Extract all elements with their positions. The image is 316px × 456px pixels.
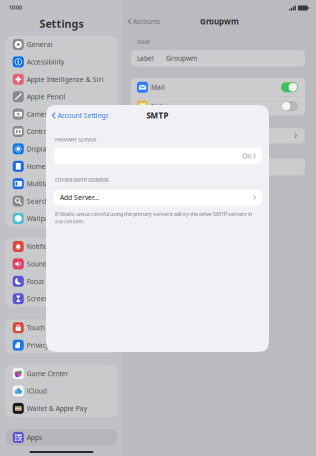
staticText: Account Settings xyxy=(57,111,108,120)
staticText: Apps xyxy=(27,433,42,442)
button[interactable]: Screen Time xyxy=(6,290,117,307)
staticText: Mail xyxy=(151,83,165,92)
staticText: Notifications xyxy=(27,242,66,251)
button[interactable]: General xyxy=(6,36,117,53)
staticText: IMAP xyxy=(137,38,150,45)
button[interactable]: Camera xyxy=(6,106,117,123)
button[interactable]: On xyxy=(54,148,262,164)
button[interactable]: Display & Brightness xyxy=(6,140,117,157)
staticText: On xyxy=(242,151,251,160)
staticText: Settings xyxy=(39,16,83,31)
staticText: Display & Brightness xyxy=(27,144,92,153)
staticText: Focus xyxy=(27,277,44,286)
staticText: Screen Time xyxy=(27,294,67,303)
staticText: Search xyxy=(27,197,49,206)
staticText: Multitasking & Gestures xyxy=(27,179,103,188)
button[interactable]: Game Center xyxy=(6,365,117,382)
button[interactable]: Wallet & Apple Pay xyxy=(6,400,117,417)
button[interactable]: Multitasking & Gestures xyxy=(6,175,117,192)
staticText: General xyxy=(27,40,53,49)
button[interactable]: Privacy & Security xyxy=(6,337,117,354)
staticText: Game Center xyxy=(27,369,69,378)
button[interactable]: Search xyxy=(6,193,117,210)
staticText: Touch ID & Passcode xyxy=(27,323,92,332)
staticText: Apple Intelligence & Siri xyxy=(27,75,104,84)
button[interactable]: Add Server… xyxy=(54,189,262,205)
staticText: PRIMARY SERVER xyxy=(55,136,96,143)
button[interactable]: Account Settings xyxy=(46,105,112,125)
staticText: Accessibility xyxy=(27,57,64,66)
button[interactable]: Accounts xyxy=(123,12,164,30)
button[interactable]: Focus xyxy=(6,273,117,290)
button[interactable]: Wallpaper xyxy=(6,210,117,227)
staticText: Add Server… xyxy=(60,193,99,202)
staticText: Groupwm xyxy=(166,54,197,63)
staticText: SMTP xyxy=(146,110,168,121)
staticText: Sounds xyxy=(27,259,50,268)
button[interactable]: Sounds xyxy=(6,255,117,272)
button[interactable]: Touch ID & Passcode xyxy=(6,319,117,336)
staticText: iCloud xyxy=(27,387,47,395)
button[interactable]: Control Center xyxy=(6,123,117,140)
staticText: OTHER SMTP SERVERS xyxy=(55,176,109,183)
staticText: Apple Pencil xyxy=(27,92,66,101)
button[interactable]: Apps xyxy=(6,429,117,446)
staticText: Camera xyxy=(27,110,52,119)
staticText: Privacy & Security xyxy=(27,341,83,350)
button[interactable]: Notifications xyxy=(6,238,117,255)
button[interactable]: Home Screen & App Library xyxy=(6,158,117,175)
staticText: Home Screen & App Library xyxy=(27,162,115,171)
button[interactable]: Apple Intelligence & Siri xyxy=(6,71,117,88)
button[interactable]: Apple Pencil xyxy=(6,88,117,105)
staticText: Groupwm xyxy=(200,16,239,27)
staticText: Control Center xyxy=(27,127,73,136)
staticText: If Mail is unsuccessful using the primar… xyxy=(55,210,252,225)
staticText: Wallpaper xyxy=(27,214,60,223)
staticText: Wallet & Apple Pay xyxy=(27,404,87,413)
button[interactable]: Accessibility xyxy=(6,53,117,70)
staticText: 10:00 xyxy=(9,4,22,11)
staticText: Notes xyxy=(151,102,169,111)
staticText: Label xyxy=(137,54,154,63)
staticText: Accounts xyxy=(133,17,160,26)
button[interactable]: iCloud xyxy=(6,382,117,399)
